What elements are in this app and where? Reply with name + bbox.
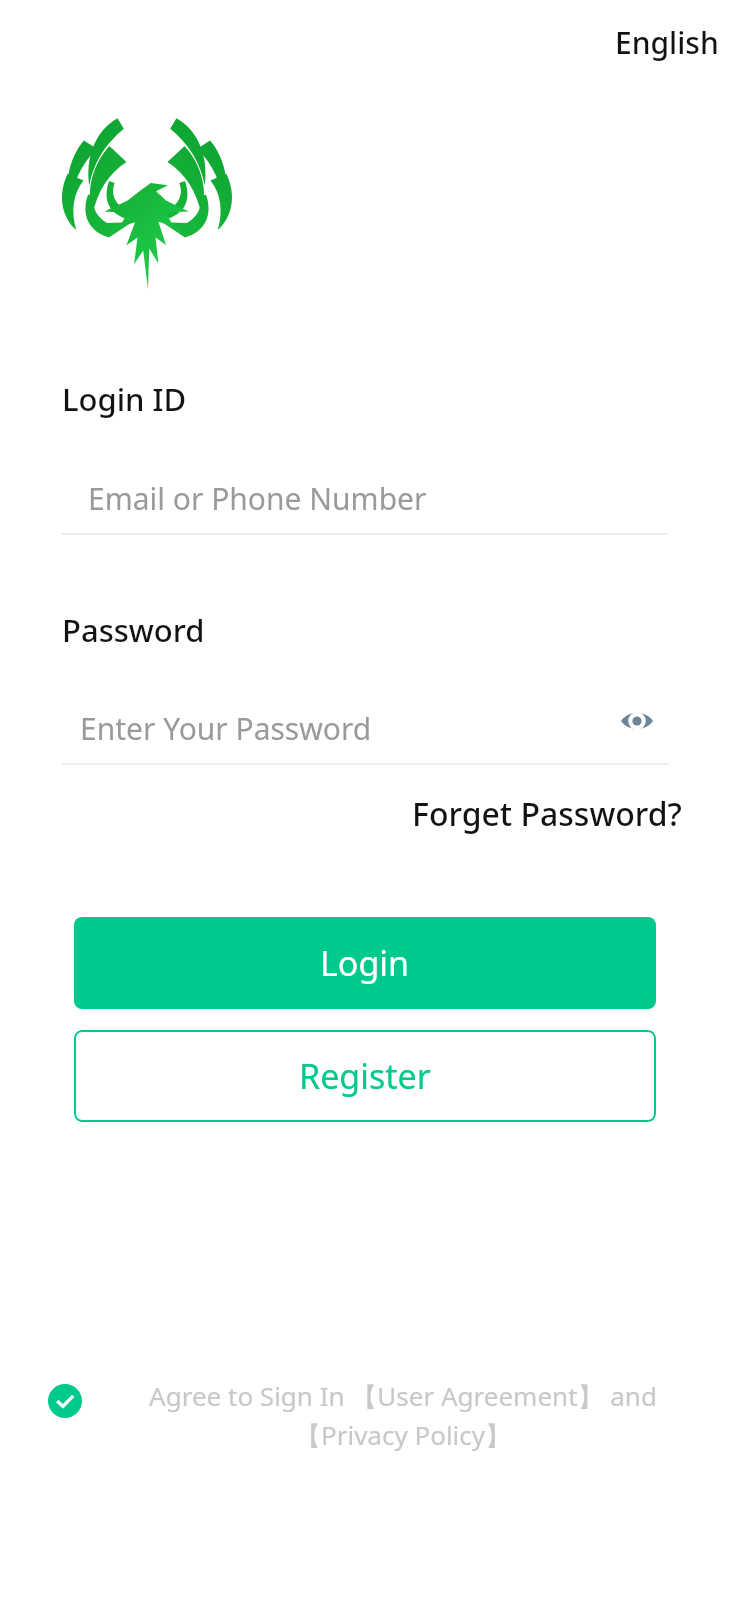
- staticText: Register: [299, 1053, 431, 1099]
- button[interactable]: Enter Your Password: [62, 692, 668, 764]
- staticText: Agree to Sign In 【User Agreement】 and 【P…: [96, 1378, 710, 1453]
- button[interactable]: Agree checkbox: [48, 1378, 710, 1453]
- staticText: Password: [62, 609, 205, 651]
- staticText: Enter Your Password: [80, 708, 372, 749]
- button[interactable]: Login: [74, 917, 656, 1009]
- staticText: Forget Password?: [412, 792, 682, 836]
- staticText: Email or Phone Number: [88, 478, 427, 519]
- button[interactable]: Email or Phone Number: [62, 462, 668, 534]
- button[interactable]: Forget Password?: [404, 786, 690, 842]
- staticText: English: [615, 22, 719, 63]
- button[interactable]: Show password: [608, 692, 666, 750]
- button[interactable]: English: [609, 16, 725, 69]
- staticText: Login: [320, 940, 410, 986]
- staticText: Login ID: [62, 378, 187, 420]
- button[interactable]: Register: [74, 1030, 656, 1122]
- other: Agree checkbox: [48, 1384, 82, 1418]
